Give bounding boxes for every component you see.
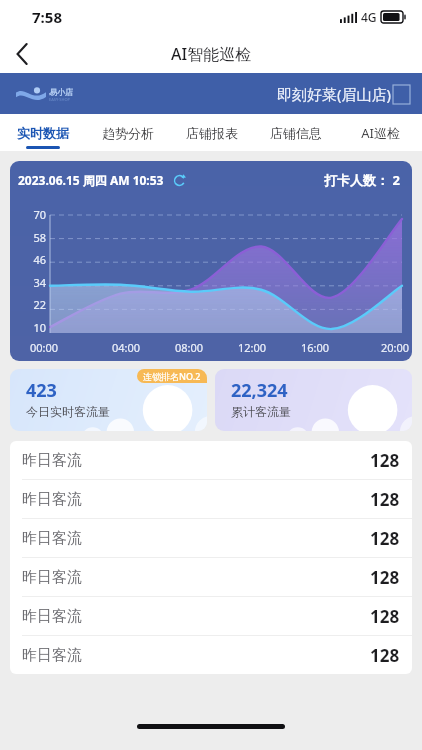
button[interactable]: 即刻好菜(眉山店) <box>277 84 410 104</box>
button[interactable]: 昨日客流 <box>10 519 412 557</box>
staticText: 趋势分析 <box>102 125 154 141</box>
button[interactable]: 423 <box>10 369 207 431</box>
staticText: 昨日客流 <box>22 607 82 626</box>
button[interactable]: 店铺报表 <box>170 114 254 151</box>
staticText: 70 <box>33 207 46 220</box>
staticText: 128 <box>370 527 400 550</box>
staticText: 连锁排名NO.2 <box>143 370 201 382</box>
staticText: 12:00 <box>238 340 267 355</box>
button[interactable]: 打卡人数： 2 <box>324 171 400 189</box>
staticText: 7:58 <box>32 7 62 27</box>
staticText: 128 <box>370 488 400 511</box>
staticText: 128 <box>370 605 400 628</box>
staticText: 22,324 <box>231 378 288 403</box>
staticText: 今日实时客流量 <box>26 404 110 419</box>
staticText: EASY·SHOP <box>49 97 71 102</box>
staticText: 08:00 <box>175 340 204 355</box>
staticText: AI智能巡检 <box>171 43 252 65</box>
staticText: 00:00 <box>30 340 59 355</box>
staticText: 04:00 <box>112 340 141 355</box>
staticText: AI巡检 <box>361 124 400 142</box>
button[interactable]: 昨日客流 <box>10 558 412 596</box>
staticText: 16:00 <box>301 340 330 355</box>
staticText: 22 <box>33 297 46 310</box>
staticText: 昨日客流 <box>22 568 82 587</box>
staticText: 昨日客流 <box>22 646 82 665</box>
staticText: 昨日客流 <box>22 490 82 509</box>
staticText: 昨日客流 <box>22 451 82 470</box>
staticText: 4G <box>361 9 377 25</box>
staticText: 128 <box>370 644 400 667</box>
staticText: 46 <box>33 252 46 265</box>
button[interactable]: 昨日客流 <box>10 480 412 518</box>
button[interactable]: 实时数据 <box>0 114 85 151</box>
button[interactable]: 易小店 <box>16 85 73 103</box>
staticText: 58 <box>33 230 46 243</box>
button[interactable]: 昨日客流 <box>10 441 412 479</box>
staticText: 2023.06.15 周四 AM 10:53 <box>18 172 164 188</box>
staticText: 10 <box>33 320 46 333</box>
staticText: 34 <box>33 275 46 288</box>
staticText: 128 <box>370 449 400 472</box>
button[interactable]: Back <box>0 34 44 73</box>
button[interactable]: 趋势分析 <box>85 114 170 151</box>
staticText: 即刻好菜(眉山店) <box>277 84 392 104</box>
staticText: 20:00 <box>381 340 410 355</box>
button[interactable]: 昨日客流 <box>10 597 412 635</box>
button[interactable]: 店铺信息 <box>254 114 338 151</box>
staticText: 实时数据 <box>17 125 69 141</box>
button[interactable]: AI巡检 <box>338 114 422 151</box>
staticText: 累计客流量 <box>231 404 291 419</box>
button[interactable]: 昨日客流 <box>10 636 412 674</box>
staticText: 店铺报表 <box>186 125 238 141</box>
staticText: 易小店 <box>49 87 73 97</box>
staticText: 423 <box>26 378 57 403</box>
button[interactable]: Refresh <box>169 170 189 190</box>
staticText: 昨日客流 <box>22 529 82 548</box>
staticText: 店铺信息 <box>270 125 322 141</box>
button[interactable]: 22,324 <box>215 369 412 431</box>
staticText: 128 <box>370 566 400 589</box>
